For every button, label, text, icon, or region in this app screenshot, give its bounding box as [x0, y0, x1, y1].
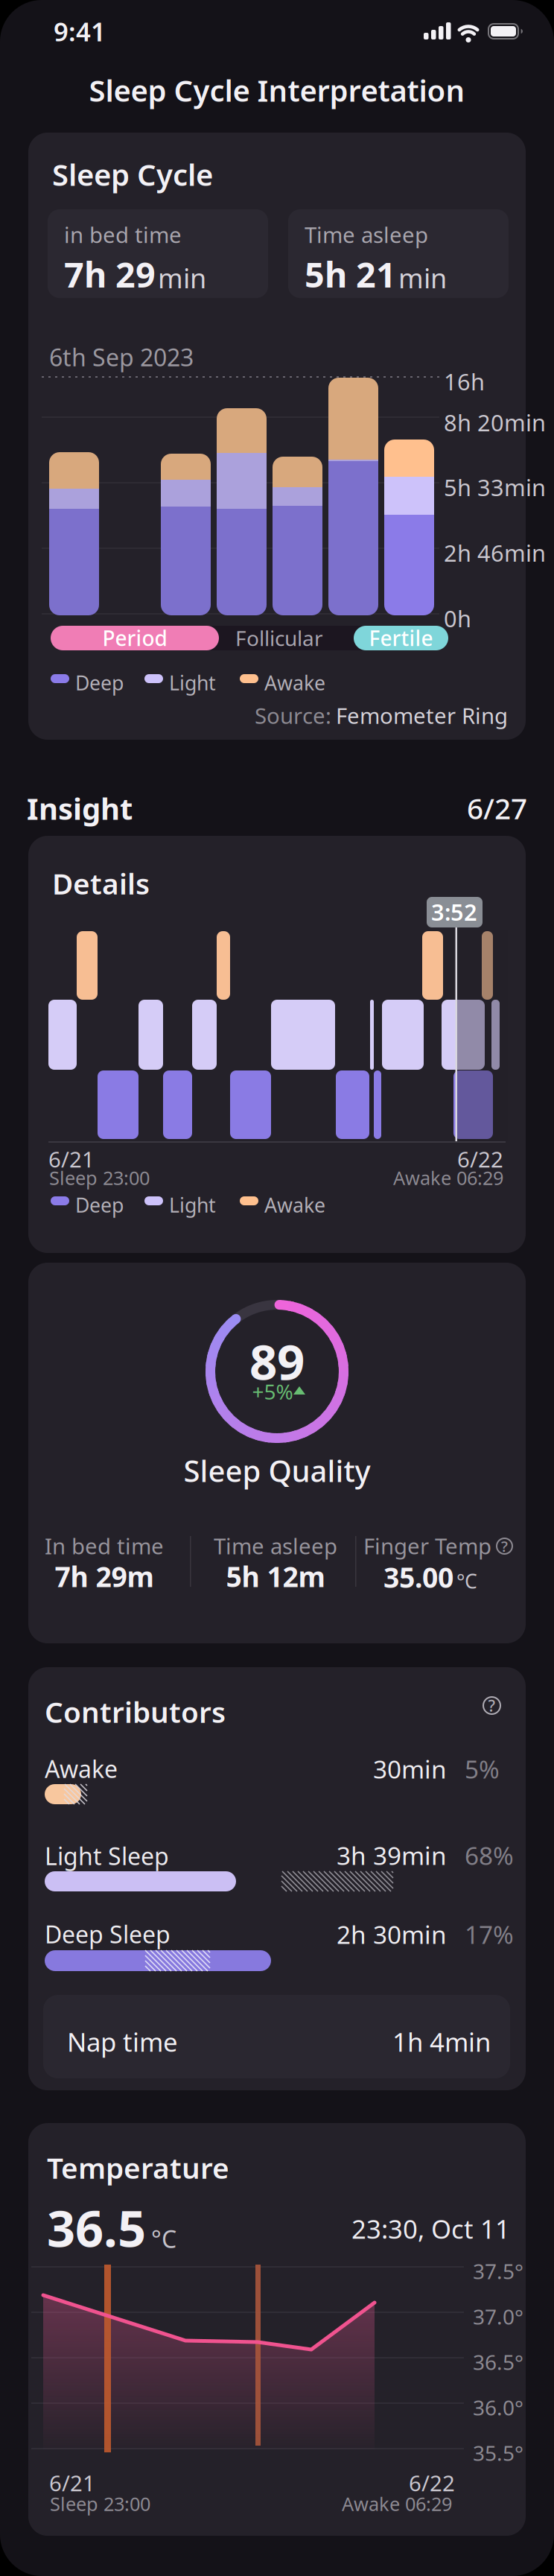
staticText: 6/22 [409, 2468, 455, 2497]
staticText: Awake 06:29 [342, 2491, 452, 2516]
staticText: Light Sleep [45, 1840, 169, 1872]
staticText: 36.0° [473, 2393, 523, 2421]
staticText: Time asleep [214, 1531, 337, 1560]
button[interactable]: Fertile [354, 626, 448, 650]
staticText: 23:30, Oct 11 [351, 2212, 510, 2246]
staticText: °C [456, 1568, 477, 1594]
staticText: Details [52, 864, 150, 902]
staticText: ? [488, 1695, 496, 1716]
staticText: Nap time [67, 2025, 178, 2059]
staticText: In bed time [45, 1531, 164, 1560]
staticText: 7h 29m [55, 1558, 154, 1595]
staticText: 36.5° [473, 2348, 523, 2376]
staticText: 9:41 [54, 14, 106, 48]
staticText: 5% [465, 1752, 500, 1785]
staticText: 37.5° [473, 2257, 523, 2285]
button[interactable]: Follicular [212, 626, 346, 650]
staticText: 5h 12m [226, 1558, 325, 1595]
staticText: Deep [75, 669, 124, 696]
button[interactable]: Period [51, 626, 219, 650]
staticText: Source: [255, 701, 331, 730]
staticText: 17% [465, 1918, 514, 1951]
staticText: 35.5° [473, 2439, 523, 2467]
staticText: 1h 4min [392, 2025, 491, 2059]
staticText: 89 [249, 1329, 305, 1393]
staticText: 35.00 [383, 1559, 453, 1596]
staticText: 0h [444, 603, 471, 633]
staticText: 3h 39min [337, 1839, 447, 1872]
staticText: 8h 20min [444, 407, 546, 438]
staticText: Sleep Cycle [52, 155, 213, 194]
staticText: Insight [27, 788, 133, 828]
button[interactable]: Finger temperature info [496, 1538, 513, 1555]
staticText: 2h 46min [444, 538, 546, 568]
staticText: 68% [465, 1839, 514, 1872]
button[interactable]: About contributors [483, 1696, 501, 1715]
staticText: Femometer Ring [336, 701, 508, 730]
staticText: Temperature [47, 2148, 229, 2187]
staticText: 5h 21 [305, 251, 396, 297]
staticText: 3:52 [431, 897, 477, 927]
staticText: Light [169, 669, 216, 696]
staticText: min [158, 260, 206, 296]
staticText: Sleep Quality [184, 1451, 370, 1490]
staticText: 6/27 [467, 789, 527, 827]
staticText: Contributors [45, 1693, 226, 1731]
staticText: Awake [264, 669, 325, 696]
staticText: 37.0° [473, 2303, 523, 2330]
staticText: Deep [75, 1192, 124, 1218]
staticText: Follicular [235, 624, 323, 652]
staticText: Awake [45, 1753, 118, 1785]
staticText: min [398, 260, 447, 296]
staticText: 36.5 [47, 2195, 146, 2261]
staticText: Time asleep [305, 220, 428, 249]
staticText: Awake 06:29 [393, 1165, 503, 1190]
staticText: 2h 30min [337, 1918, 447, 1951]
staticText: 6th Sep 2023 [49, 341, 194, 373]
staticText: Fertile [369, 624, 433, 652]
staticText: Awake [264, 1192, 325, 1218]
button[interactable]: Nap time [43, 1995, 510, 2078]
staticText: ? [501, 1536, 508, 1556]
staticText: Sleep 23:00 [49, 1165, 150, 1190]
staticText: °C [151, 2223, 176, 2255]
staticText: Light [169, 1192, 216, 1218]
staticText: in bed time [64, 220, 182, 249]
staticText: 6/21 [48, 1145, 95, 1174]
staticText: Sleep Cycle Interpretation [89, 70, 465, 110]
staticText: 6/22 [457, 1145, 503, 1174]
staticText: 7h 29 [64, 251, 156, 297]
staticText: Deep Sleep [45, 1918, 171, 1950]
staticText: Period [102, 624, 167, 652]
staticText: Finger Temp [363, 1531, 491, 1560]
staticText: 16h [444, 366, 485, 397]
staticText: +5% [252, 1378, 293, 1405]
staticText: 5h 33min [444, 472, 546, 502]
staticText: Sleep 23:00 [50, 2491, 150, 2516]
staticText: 30min [373, 1752, 447, 1785]
staticText: 6/21 [49, 2468, 95, 2497]
